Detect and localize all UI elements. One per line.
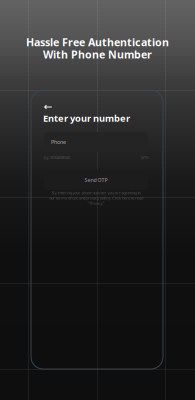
button[interactable]: Send OTP [44, 170, 148, 190]
staticText: Send OTP [84, 176, 107, 184]
staticText: 0/10 [141, 155, 148, 160]
staticText: our terms of use and privacy policy. Cli… [49, 195, 143, 201]
staticText: Phone [51, 138, 66, 146]
staticText: With Phone Number [43, 47, 152, 61]
staticText: Enter your number [43, 112, 130, 124]
staticText: "Privacy" [87, 201, 104, 206]
button[interactable]: Back [44, 102, 58, 112]
staticText: By entering your phone number you are ag… [51, 190, 140, 195]
staticText: Eg. 9034838940 [44, 155, 70, 160]
staticText: Hassle Free Authentication [26, 35, 169, 49]
